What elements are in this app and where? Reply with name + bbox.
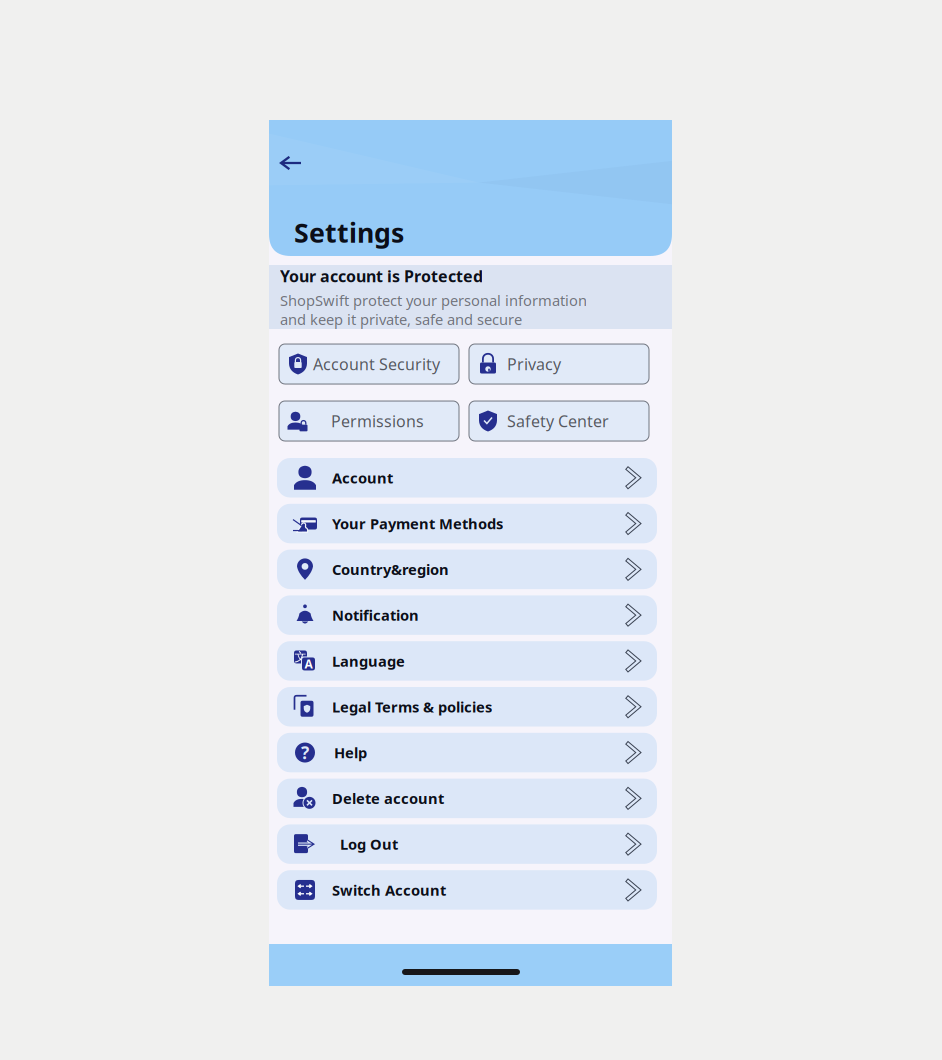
button[interactable]: Log Out: [277, 824, 657, 864]
button[interactable]: Delete account: [277, 779, 657, 818]
staticText: A: [304, 656, 312, 672]
staticText: 文: [294, 650, 306, 664]
staticText: Language: [332, 651, 405, 671]
button[interactable]: Account Security: [279, 344, 459, 384]
staticText: Switch Account: [332, 880, 446, 900]
button[interactable]: Safety Center: [469, 401, 649, 441]
staticText: Log Out: [340, 834, 398, 854]
button[interactable]: Legal Terms & policies: [277, 687, 657, 726]
staticText: Account: [332, 468, 393, 487]
staticText: Privacy: [507, 353, 561, 375]
staticText: Account Security: [313, 353, 440, 375]
staticText: Legal Terms & policies: [332, 697, 492, 716]
button[interactable]: 文: [277, 641, 657, 681]
staticText: ShopSwift protect your personal informat…: [280, 290, 587, 310]
button[interactable]: Country&region: [277, 550, 657, 589]
staticText: Help: [334, 743, 367, 762]
button[interactable]: Privacy: [469, 344, 649, 384]
staticText: Your account is Protected: [280, 265, 483, 287]
staticText: Safety Center: [507, 410, 609, 432]
button[interactable]: Notification: [277, 595, 657, 635]
staticText: and keep it private, safe and secure: [280, 309, 522, 329]
staticText: Delete account: [332, 789, 444, 808]
staticText: Settings: [294, 215, 404, 250]
staticText: Notification: [332, 605, 419, 625]
button[interactable]: Permissions: [279, 401, 459, 441]
button[interactable]: Account: [277, 458, 657, 497]
button[interactable]: Your Payment Methods: [277, 504, 657, 543]
button[interactable]: Switch Account: [277, 870, 657, 910]
staticText: Country&region: [332, 560, 449, 579]
staticText: ?: [301, 741, 309, 764]
staticText: Your Payment Methods: [332, 514, 503, 533]
staticText: Permissions: [331, 410, 424, 432]
button[interactable]: Back: [269, 120, 317, 180]
button[interactable]: ?: [277, 733, 657, 772]
